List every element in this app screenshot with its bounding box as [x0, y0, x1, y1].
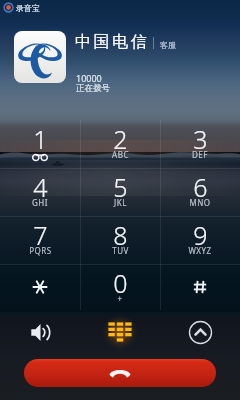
button[interactable]: 4	[0, 168, 80, 216]
button[interactable]: Keypad	[80, 310, 160, 354]
staticText: MNO	[189, 197, 211, 208]
staticText: DEF	[192, 149, 208, 160]
button[interactable]: End call	[24, 359, 216, 387]
staticText: GHI	[32, 197, 48, 208]
staticText: 6	[193, 170, 208, 204]
staticText: 7	[33, 218, 48, 252]
button[interactable]: 9	[160, 216, 240, 264]
staticText: TUV	[112, 245, 129, 256]
staticText: 中国电信	[75, 32, 150, 52]
button[interactable]: 3	[160, 120, 240, 168]
staticText: 3	[193, 122, 208, 156]
button[interactable]: Speaker	[0, 310, 80, 354]
staticText: JKL	[114, 197, 127, 208]
staticText: WXYZ	[188, 245, 212, 256]
button[interactable]	[0, 264, 80, 310]
staticText: 5	[113, 170, 128, 204]
staticText: 9	[193, 218, 208, 252]
staticText: +	[117, 293, 123, 304]
button[interactable]: 7	[0, 216, 80, 264]
staticText: 客服	[160, 40, 176, 50]
staticText: 8	[113, 218, 128, 252]
staticText: 录音宝	[16, 3, 40, 13]
button[interactable]: 2	[80, 120, 160, 168]
staticText: PQRS	[29, 245, 52, 256]
staticText: 正在拨号	[76, 83, 110, 94]
button[interactable]: 5	[80, 168, 160, 216]
staticText: 10000	[76, 72, 102, 84]
staticText: 1	[33, 122, 48, 156]
button[interactable]: 8	[80, 216, 160, 264]
staticText: 0	[113, 266, 128, 300]
staticText: 4	[33, 170, 48, 204]
button[interactable]: 1	[0, 120, 80, 168]
button[interactable]: More options	[160, 310, 240, 354]
button[interactable]: 0	[80, 264, 160, 310]
button[interactable]	[160, 264, 240, 310]
button[interactable]: 6	[160, 168, 240, 216]
staticText: ABC	[112, 149, 129, 160]
staticText: 2	[113, 122, 128, 156]
